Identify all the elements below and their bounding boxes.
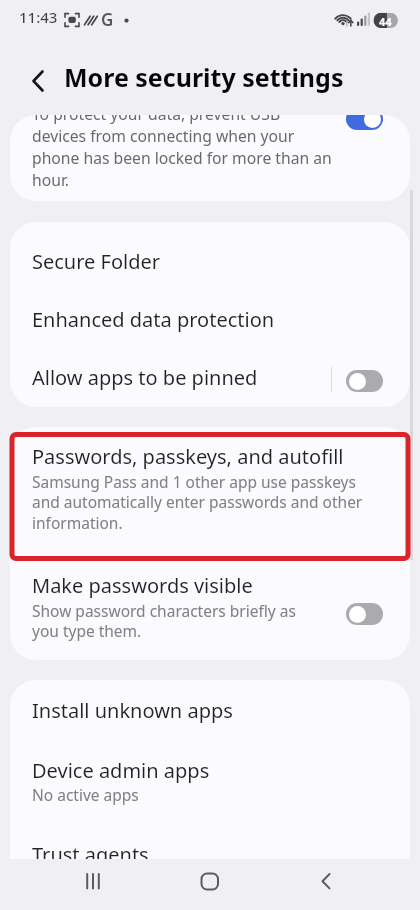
button[interactable]: Trust agents — [10, 818, 410, 859]
button[interactable] — [70, 862, 118, 902]
button[interactable]: Install unknown apps — [10, 680, 410, 740]
button[interactable] — [346, 370, 383, 392]
button[interactable]: Device admin apps — [10, 740, 410, 818]
staticText: G — [101, 8, 114, 31]
button[interactable] — [346, 603, 383, 625]
staticText: Enhanced data protection — [32, 306, 275, 333]
button[interactable]: Passwords, passkeys, and autofill — [10, 427, 410, 545]
staticText: 44 — [379, 14, 392, 29]
button[interactable] — [18, 62, 56, 100]
button[interactable] — [302, 862, 350, 902]
staticText: 11:43 — [19, 7, 58, 27]
staticText: More security settings — [64, 60, 344, 94]
staticText: Secure Folder — [32, 248, 161, 275]
staticText: Device admin apps — [32, 757, 210, 784]
button[interactable]: To protect your data, prevent USB device… — [10, 115, 410, 201]
staticText: Samsung Pass and 1 other app use passkey… — [32, 471, 363, 534]
staticText: No active apps — [32, 784, 139, 805]
button[interactable]: Make passwords visible — [10, 545, 410, 660]
staticText: Allow apps to be pinned — [32, 364, 258, 391]
button[interactable] — [346, 115, 383, 130]
staticText: To protect your data, prevent USB device… — [32, 115, 332, 189]
staticText: Trust agents — [32, 841, 149, 859]
staticText: Passwords, passkeys, and autofill — [32, 443, 344, 470]
button[interactable]: Enhanced data protection — [10, 291, 410, 349]
staticText: Install unknown apps — [32, 697, 233, 724]
button[interactable] — [186, 862, 234, 902]
staticText: Make passwords visible — [32, 572, 253, 599]
button[interactable]: Allow apps to be pinned — [10, 349, 410, 407]
staticText: Show password characters briefly as you … — [32, 600, 296, 642]
button[interactable]: Secure Folder — [10, 233, 410, 291]
